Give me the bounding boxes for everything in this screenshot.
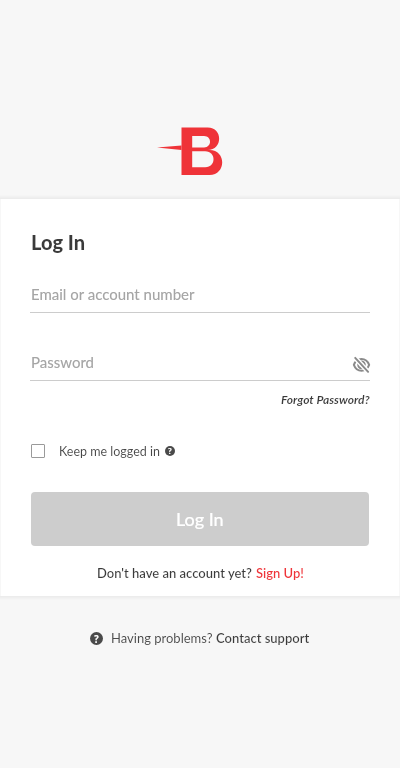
button[interactable]: Show password xyxy=(348,351,374,377)
staticText: ? xyxy=(168,446,172,456)
staticText: Forgot Password? xyxy=(281,392,370,406)
button[interactable]: Password xyxy=(30,353,370,381)
button[interactable]: Email or account number xyxy=(30,285,370,313)
button[interactable]: Sign Up! xyxy=(256,565,304,581)
staticText: ? xyxy=(94,633,99,645)
staticText: Don't have an account yet? xyxy=(97,565,256,581)
staticText: Keep me logged in xyxy=(59,444,160,459)
staticText: Log In xyxy=(31,230,86,254)
button[interactable]: Forgot Password? xyxy=(281,392,370,406)
staticText: Sign Up! xyxy=(256,565,304,581)
staticText: Password xyxy=(31,353,94,371)
button[interactable]: ? xyxy=(0,626,400,650)
staticText: Log In xyxy=(176,508,224,530)
button[interactable]: Log In xyxy=(31,492,369,546)
button[interactable]: Keep me logged in xyxy=(31,439,175,463)
staticText: Email or account number xyxy=(31,285,195,303)
staticText: Having problems? xyxy=(111,630,216,646)
staticText: Contact support xyxy=(216,630,310,646)
